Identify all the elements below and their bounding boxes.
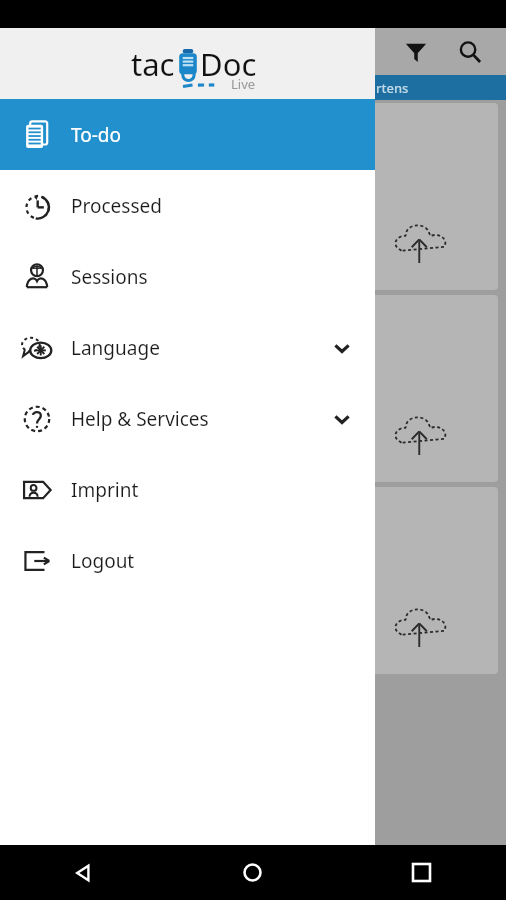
staticText: Processed <box>71 193 162 219</box>
button[interactable]: Imprint <box>0 454 375 525</box>
staticText: POSSIBLE APPROVAL <box>82 494 233 614</box>
staticText: POSSIBLE APPROVAL <box>82 302 233 422</box>
button[interactable]: Back <box>0 845 168 900</box>
staticText: tac <box>131 43 175 85</box>
staticText: Doc <box>200 43 257 85</box>
button[interactable]: POSSIBLE APPROVAL <box>8 103 498 290</box>
staticText: Imprint <box>71 477 139 503</box>
button[interactable]: Processed <box>0 170 375 241</box>
button[interactable]: POSSIBLE APPROVAL <box>8 487 498 674</box>
staticText: rtens <box>376 79 409 97</box>
button[interactable]: To-do <box>0 99 375 170</box>
staticText: POSSIBLE APPROVAL <box>82 110 233 230</box>
button[interactable]: Help & Services <box>0 383 375 454</box>
staticText: Live <box>231 75 256 93</box>
button[interactable]: Search <box>448 30 492 74</box>
button[interactable]: Home <box>168 845 337 900</box>
button[interactable]: Logout <box>0 525 375 596</box>
button[interactable]: Language <box>0 312 375 383</box>
staticText: Sessions <box>71 264 148 290</box>
button[interactable]: Filter <box>394 30 438 74</box>
staticText: Help & Services <box>71 406 209 432</box>
button[interactable]: POSSIBLE APPROVAL <box>8 295 498 482</box>
button[interactable]: Sessions <box>0 241 375 312</box>
staticText: Language <box>71 335 160 361</box>
staticText: Logout <box>71 548 135 574</box>
button[interactable]: Recent apps <box>337 845 506 900</box>
staticText: To-do <box>71 122 122 148</box>
